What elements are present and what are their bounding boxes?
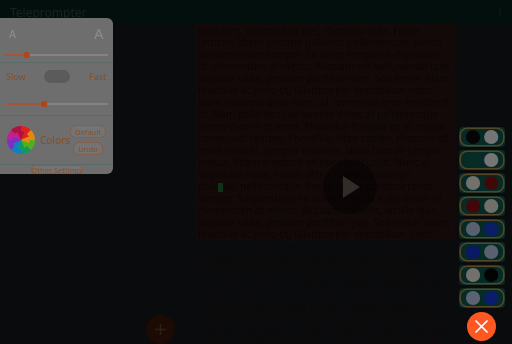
button[interactable]: Other Settings: [31, 165, 83, 174]
button[interactable]: Colour theme: [459, 150, 505, 170]
button[interactable]: Colour theme: [459, 173, 505, 193]
staticText: A: [94, 23, 104, 43]
button[interactable]: Colour theme: [459, 242, 505, 262]
button[interactable]: Close: [467, 312, 496, 341]
button[interactable]: Slider: [5, 97, 108, 111]
staticText: Colors: [40, 133, 70, 147]
staticText: Teleprompter: [10, 4, 87, 20]
button[interactable]: Colour theme: [459, 288, 505, 308]
button[interactable]: Colour theme: [459, 196, 505, 216]
staticText: Slow: [6, 70, 26, 82]
staticText: Undo: [78, 144, 98, 154]
button[interactable]: Speed toggle: [44, 70, 70, 83]
button[interactable]: Slider: [5, 48, 108, 62]
staticText: Default: [75, 127, 101, 137]
button[interactable]: Default: [70, 125, 106, 138]
staticText: A: [9, 26, 17, 41]
button[interactable]: Colour theme: [459, 127, 505, 147]
button[interactable]: Undo: [73, 142, 103, 155]
staticText: Other Settings: [31, 165, 83, 174]
button[interactable]: Colour theme: [459, 265, 505, 285]
button[interactable]: Play: [323, 160, 377, 214]
button[interactable]: Add: [146, 315, 175, 344]
button[interactable]: Colour theme: [459, 219, 505, 239]
button[interactable]: Colour wheel: [7, 126, 35, 154]
staticText: tincidunt, euismod ex nec, rhoncus nulla…: [198, 24, 452, 240]
staticText: Fast: [89, 70, 107, 82]
